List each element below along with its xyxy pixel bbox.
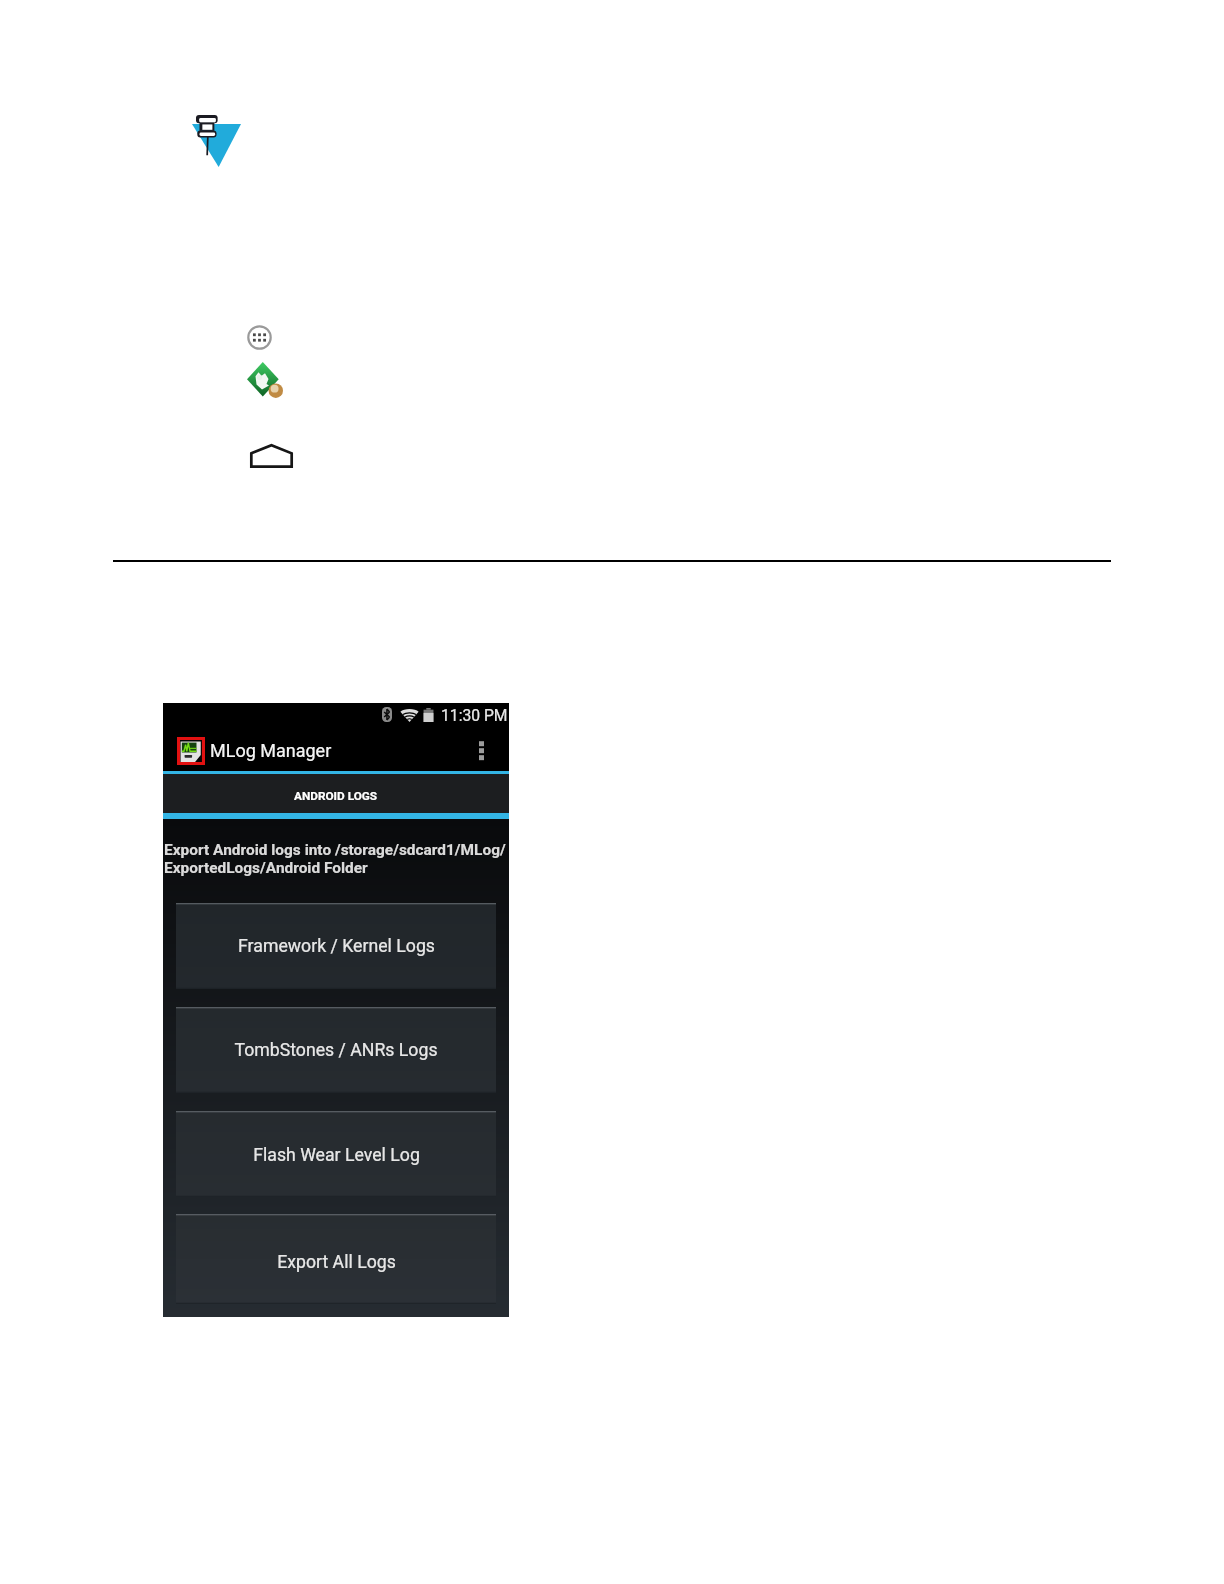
button[interactable]: File manager app [247, 362, 283, 398]
staticText: Export All Logs [277, 1252, 396, 1273]
button[interactable]: ANDROID LOGS [163, 774, 509, 813]
other: Pin marker [192, 115, 241, 167]
staticText: Flash Wear Level Log [253, 1145, 420, 1166]
button[interactable]: Flash Wear Level Log [176, 1111, 496, 1197]
button[interactable]: TombStones / ANRs Logs [176, 1007, 496, 1093]
staticText: Framework / Kernel Logs [238, 936, 435, 957]
button[interactable]: MLog Manager [163, 726, 509, 771]
button[interactable]: All apps [247, 325, 272, 350]
button[interactable]: More options [465, 735, 497, 767]
button[interactable]: Export All Logs [176, 1214, 496, 1304]
button[interactable]: Framework / Kernel Logs [176, 903, 496, 989]
button[interactable]: Home [250, 444, 293, 468]
staticText: 11:30 PM [441, 706, 508, 724]
staticText: Export Android logs into /storage/sdcard… [164, 841, 509, 877]
staticText: TombStones / ANRs Logs [234, 1040, 438, 1061]
staticText: MLog Manager [210, 740, 332, 761]
staticText: ANDROID LOGS [294, 789, 378, 803]
